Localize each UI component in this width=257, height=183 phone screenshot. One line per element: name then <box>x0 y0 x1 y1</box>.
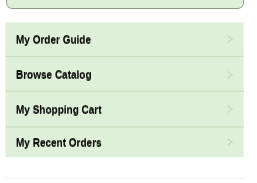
button[interactable] <box>6 0 244 9</box>
button[interactable]: My Shopping Cart <box>6 91 244 127</box>
staticText: My Shopping Cart <box>16 104 102 115</box>
other: Open <box>224 69 236 81</box>
button[interactable]: Browse Catalog <box>6 57 244 92</box>
staticText: My Shopping Cart <box>16 105 102 116</box>
button[interactable]: My Order Guide <box>6 22 244 56</box>
other: Open <box>224 103 236 115</box>
staticText: My Order Guide <box>16 35 92 46</box>
staticText: My Recent Orders <box>16 137 102 148</box>
staticText: My Order Guide <box>16 34 92 45</box>
staticText: Browse Catalog <box>16 70 92 81</box>
staticText: Browse Catalog <box>16 69 92 80</box>
other: Open <box>224 136 236 148</box>
other: Open <box>224 33 236 45</box>
button[interactable]: My Recent Orders <box>6 127 244 157</box>
staticText: My Recent Orders <box>16 138 102 149</box>
